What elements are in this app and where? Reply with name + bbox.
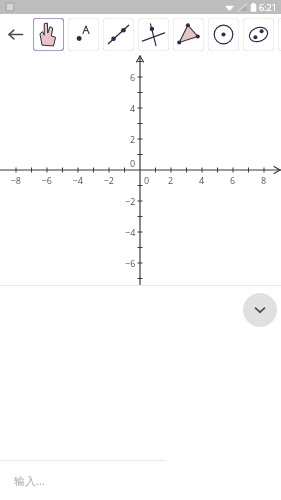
button[interactable]: Circle [208,18,239,51]
button[interactable]: Conic [243,18,274,51]
staticText: 输入... [14,473,45,488]
button[interactable]: Angle [278,18,281,51]
button[interactable]: Perpendicular [138,18,169,51]
button[interactable]: Move [33,18,64,51]
staticText: 6:21 [259,1,277,13]
button[interactable]: Collapse [243,293,277,327]
button[interactable]: Point [68,18,99,51]
button[interactable]: Polygon [173,18,204,51]
button[interactable]: 输入... [0,461,281,500]
button[interactable]: Back [0,14,31,55]
button[interactable]: Line [103,18,134,51]
